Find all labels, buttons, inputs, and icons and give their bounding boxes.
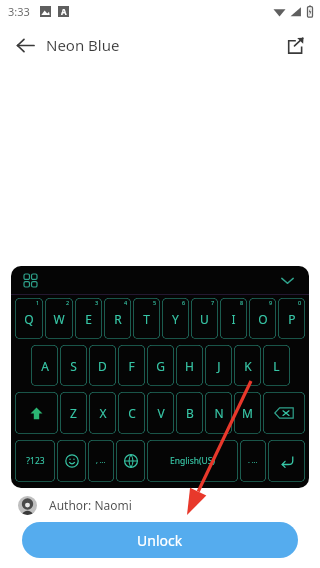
staticText: T (143, 311, 150, 327)
button[interactable]: Menu (19, 269, 41, 291)
staticText: , ... (96, 456, 106, 466)
staticText: 4 (124, 299, 128, 306)
button[interactable]: V (147, 392, 174, 434)
button[interactable]: N (205, 392, 232, 434)
button[interactable]: Back (8, 28, 42, 62)
button[interactable] (116, 440, 145, 482)
staticText: Author: Naomi (49, 497, 132, 513)
button[interactable]: Unlock (22, 522, 298, 558)
button[interactable]: F (118, 345, 145, 386)
staticText: 2 (66, 299, 70, 306)
staticText: H (185, 358, 194, 374)
button[interactable] (57, 440, 86, 482)
staticText: E (85, 311, 92, 327)
staticText: N (214, 405, 224, 421)
button[interactable]: K (234, 345, 261, 386)
button[interactable]: M (234, 392, 261, 434)
staticText: A (61, 6, 67, 17)
staticText: G (156, 358, 165, 374)
staticText: J (217, 358, 221, 374)
staticText: A (41, 358, 49, 374)
staticText: V (157, 405, 165, 421)
staticText: C (128, 405, 136, 421)
button[interactable]: Q (15, 298, 43, 339)
button[interactable]: B (176, 392, 203, 434)
button[interactable] (15, 392, 58, 434)
staticText: R (114, 311, 122, 327)
button[interactable]: T (133, 298, 160, 339)
staticText: ?123 (26, 455, 45, 467)
button[interactable]: P (278, 298, 305, 339)
staticText: K (244, 358, 252, 374)
staticText: Unlock (137, 531, 183, 550)
button[interactable]: L (263, 345, 290, 386)
button[interactable]: I (220, 298, 247, 339)
button[interactable]: J (205, 345, 232, 386)
staticText: M (242, 405, 253, 421)
staticText: I (231, 311, 236, 327)
staticText: P (288, 311, 296, 327)
button[interactable]: D (89, 345, 116, 386)
staticText: 0 (298, 299, 302, 306)
button[interactable]: ?123 (15, 440, 55, 482)
staticText: W (53, 311, 65, 327)
button[interactable]: S (60, 345, 87, 386)
button[interactable]: A (31, 345, 58, 386)
staticText: Y (172, 311, 179, 327)
staticText: D (98, 358, 107, 374)
button[interactable] (268, 440, 305, 482)
staticText: English(US) (170, 455, 215, 467)
button[interactable]: X (89, 392, 116, 434)
button[interactable]: G (147, 345, 174, 386)
staticText: 7 (211, 299, 215, 306)
button[interactable]: O (249, 298, 276, 339)
staticText: Q (24, 311, 34, 327)
button[interactable]: Collapse (275, 268, 299, 292)
staticText: Z (70, 405, 77, 421)
staticText: Neon Blue (46, 35, 120, 55)
button[interactable]: U (191, 298, 218, 339)
staticText: 8 (240, 299, 244, 306)
button[interactable]: Z (60, 392, 87, 434)
button[interactable]: C (118, 392, 145, 434)
staticText: B (186, 405, 194, 421)
staticText: 5 (153, 299, 157, 306)
button[interactable]: E (75, 298, 102, 339)
button[interactable]: Y (162, 298, 189, 339)
button[interactable]: , ... (88, 440, 114, 482)
button[interactable]: R (104, 298, 131, 339)
staticText: X (99, 405, 107, 421)
staticText: U (200, 311, 209, 327)
staticText: 9 (269, 299, 273, 306)
staticText: 3 (95, 299, 99, 306)
button[interactable]: Share (278, 28, 312, 62)
button[interactable] (263, 392, 305, 434)
button[interactable]: H (176, 345, 203, 386)
staticText: S (70, 358, 77, 374)
button[interactable]: . ... (240, 440, 266, 482)
staticText: F (128, 358, 135, 374)
staticText: 1 (36, 299, 40, 306)
button[interactable]: W (45, 298, 73, 339)
staticText: O (258, 311, 268, 327)
button[interactable]: English(US) (147, 440, 238, 482)
staticText: 6 (182, 299, 186, 306)
staticText: 3:33 (8, 4, 30, 19)
staticText: . ... (248, 456, 258, 466)
staticText: L (273, 358, 280, 374)
